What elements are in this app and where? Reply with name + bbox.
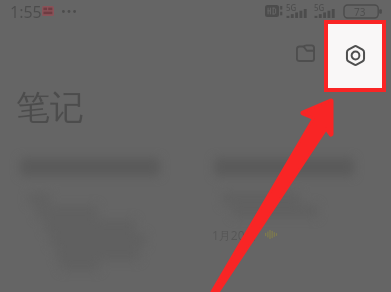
button[interactable]: Folders — [286, 34, 324, 72]
staticText: 笔记 — [16, 86, 84, 129]
staticText: 73 — [354, 5, 366, 19]
button[interactable]: Settings — [328, 24, 382, 88]
staticText: 1:55 — [10, 1, 42, 23]
staticText: 1月20日 — [212, 227, 257, 243]
staticText: 5G — [314, 2, 325, 13]
staticText: 5G — [286, 2, 297, 13]
